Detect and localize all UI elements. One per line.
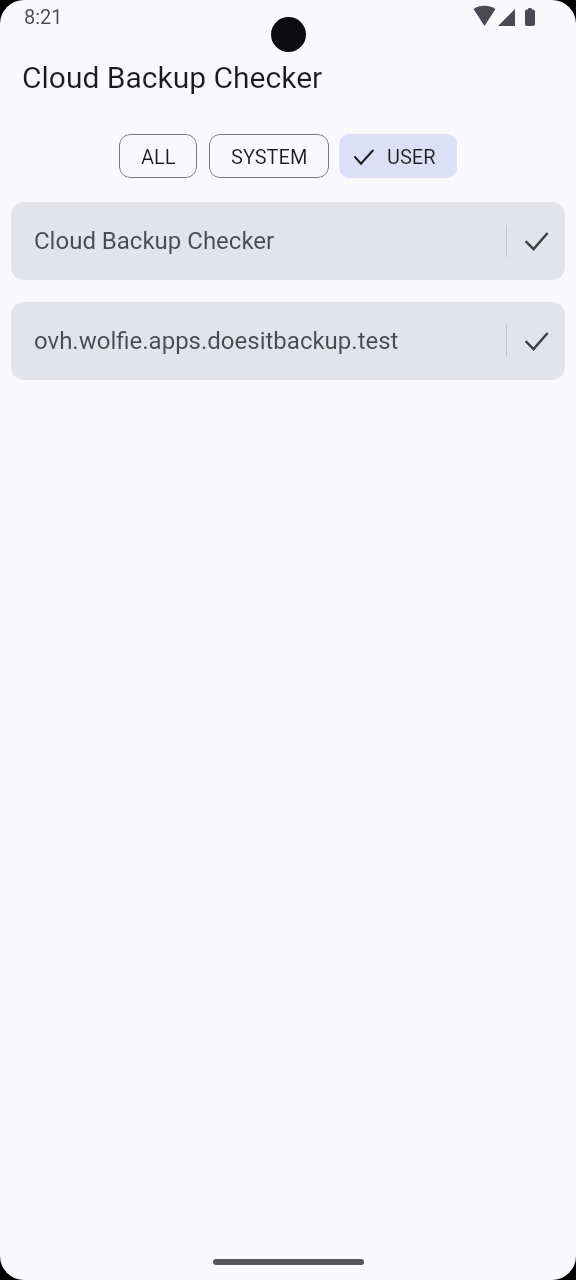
staticText: USER (387, 145, 436, 168)
staticText: 8:21 (24, 5, 63, 28)
staticText: Cloud Backup Checker (22, 60, 323, 95)
button[interactable]: ovh.wolfie.apps.doesitbackup.test (11, 302, 565, 380)
staticText: ovh.wolfie.apps.doesitbackup.test (34, 327, 506, 355)
button[interactable]: Cloud Backup Checker (11, 202, 565, 280)
button[interactable]: Backup enabled (507, 302, 565, 380)
staticText: SYSTEM (231, 145, 308, 168)
button[interactable]: USER (339, 134, 457, 178)
staticText: ALL (141, 145, 176, 168)
button[interactable]: ALL (119, 134, 197, 178)
button[interactable]: Backup enabled (507, 202, 565, 280)
button[interactable]: SYSTEM (209, 134, 329, 178)
staticText: Cloud Backup Checker (34, 227, 506, 255)
